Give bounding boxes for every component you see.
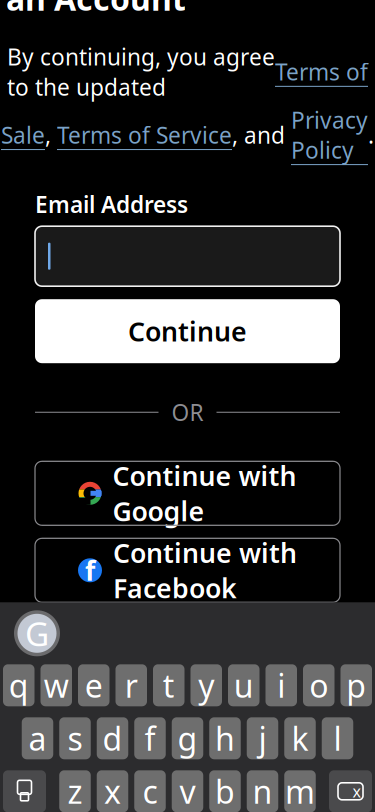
- staticText: z: [67, 770, 82, 812]
- button[interactable]: q: [3, 664, 34, 706]
- button[interactable]: i: [265, 664, 297, 706]
- staticText: x: [104, 770, 121, 812]
- staticText: q: [9, 664, 29, 707]
- staticText: c: [142, 770, 157, 812]
- staticText: ,: [45, 120, 57, 150]
- button[interactable]: Autofill saved login: [14, 610, 60, 656]
- button[interactable]: x: [97, 770, 128, 812]
- button[interactable]: w: [40, 664, 72, 706]
- staticText: k: [291, 717, 308, 760]
- staticText: G: [25, 611, 49, 655]
- staticText: y: [198, 664, 214, 707]
- staticText: x: [352, 781, 360, 802]
- staticText: t: [163, 664, 175, 707]
- staticText: Continue with Facebook: [113, 535, 297, 606]
- button[interactable]: n: [247, 770, 278, 812]
- button[interactable]: p: [340, 664, 372, 706]
- button[interactable]: Terms of Service: [57, 120, 232, 150]
- staticText: Sale: [1, 120, 45, 150]
- staticText: n: [252, 770, 272, 812]
- button[interactable]: Continue: [35, 299, 340, 363]
- button[interactable]: f: [35, 538, 340, 602]
- staticText: i: [277, 664, 285, 707]
- button[interactable]: Sale: [1, 120, 45, 150]
- button[interactable]: y: [190, 664, 222, 706]
- staticText: w: [44, 664, 69, 707]
- button[interactable]: Shift: [3, 770, 46, 812]
- staticText: v: [179, 770, 195, 812]
- staticText: , and: [232, 120, 291, 150]
- staticText: f: [144, 717, 155, 760]
- button[interactable]: d: [97, 717, 128, 759]
- button[interactable]: f: [134, 717, 166, 759]
- staticText: u: [234, 664, 254, 707]
- staticText: j: [258, 717, 266, 760]
- staticText: a: [28, 717, 46, 760]
- staticText: By continuing, you agree to the updated: [7, 42, 275, 102]
- button[interactable]: Continue with Google: [35, 461, 340, 525]
- staticText: o: [309, 664, 328, 707]
- button[interactable]: m: [284, 770, 316, 812]
- button[interactable]: l: [322, 717, 353, 759]
- staticText: g: [177, 717, 197, 760]
- button[interactable]: c: [134, 770, 166, 812]
- staticText: l: [333, 717, 341, 760]
- staticText: b: [215, 770, 235, 812]
- staticText: m: [285, 770, 315, 812]
- staticText: r: [125, 664, 138, 707]
- staticText: e: [85, 664, 103, 707]
- staticText: f: [85, 553, 95, 588]
- button[interactable]: Terms of: [275, 57, 368, 87]
- staticText: Continue: [128, 313, 247, 349]
- button[interactable]: s: [59, 717, 91, 759]
- staticText: Continue with Google: [112, 458, 296, 529]
- staticText: p: [346, 664, 366, 707]
- button[interactable]: b: [209, 770, 241, 812]
- staticText: Log In or Create an Account: [6, 0, 261, 20]
- button[interactable]: Privacy Policy: [291, 105, 368, 165]
- button[interactable]: v: [172, 770, 203, 812]
- staticText: d: [102, 717, 122, 760]
- button[interactable]: r: [115, 664, 147, 706]
- button[interactable]: z: [59, 770, 91, 812]
- staticText: .: [368, 120, 374, 150]
- button[interactable]: g: [172, 717, 203, 759]
- button[interactable]: u: [228, 664, 259, 706]
- staticText: Email Address: [35, 189, 188, 219]
- button[interactable]: o: [303, 664, 334, 706]
- staticText: Terms of: [275, 57, 368, 87]
- button[interactable]: j: [247, 717, 278, 759]
- staticText: Privacy Policy: [291, 105, 368, 165]
- button[interactable]: Delete: [329, 770, 372, 812]
- staticText: Terms of Service: [57, 120, 232, 150]
- button[interactable]: a: [22, 717, 53, 759]
- staticText: h: [215, 717, 235, 760]
- button[interactable]: e: [78, 664, 109, 706]
- staticText: s: [67, 717, 82, 760]
- button[interactable]: k: [284, 717, 316, 759]
- staticText: OR: [171, 397, 203, 427]
- button[interactable]: h: [209, 717, 241, 759]
- button[interactable]: t: [153, 664, 184, 706]
